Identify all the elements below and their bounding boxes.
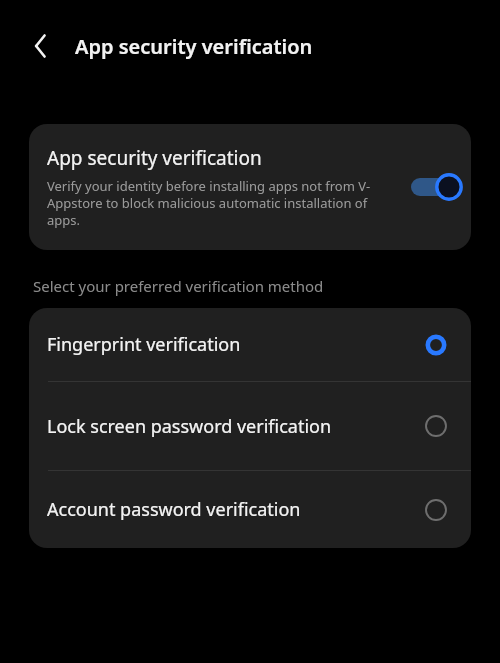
staticText: Verify your identity before installing a…: [47, 177, 401, 229]
staticText: Select your preferred verification metho…: [33, 276, 324, 296]
button[interactable]: App security verification: [29, 124, 471, 250]
staticText: App security verification: [47, 145, 262, 171]
button[interactable]: App security verification toggle: [411, 170, 457, 204]
button[interactable]: Account password verification: [29, 471, 471, 548]
staticText: App security verification: [75, 33, 313, 60]
button[interactable]: Fingerprint verification: [29, 308, 471, 381]
staticText: Account password verification: [47, 497, 411, 522]
button[interactable]: Back: [21, 26, 61, 66]
staticText: Fingerprint verification: [47, 332, 411, 357]
button[interactable]: Lock screen password verification: [29, 382, 471, 470]
staticText: Lock screen password verification: [47, 414, 411, 439]
